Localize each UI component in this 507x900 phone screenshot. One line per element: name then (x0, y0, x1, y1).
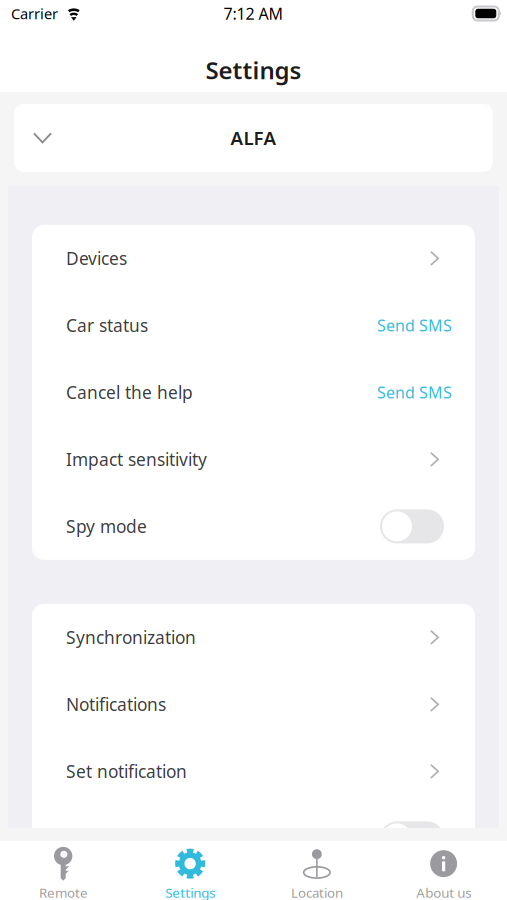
button[interactable]: Sound (32, 805, 475, 872)
staticText: Settings (165, 884, 215, 900)
staticText: Carrier (11, 4, 58, 23)
staticText: Synchronization (66, 626, 196, 649)
staticText: Car status (66, 314, 148, 337)
staticText: Impact sensitivity (66, 448, 207, 471)
staticText: Sound (66, 827, 119, 850)
staticText: Send SMS (377, 315, 452, 336)
button[interactable]: Location (253, 841, 380, 900)
staticText: Notifications (66, 693, 166, 716)
button[interactable]: Synchronization (32, 604, 475, 671)
staticText: Send SMS (377, 382, 452, 403)
button[interactable]: Cancel the help (32, 359, 475, 426)
staticText: Location (291, 884, 343, 900)
button[interactable]: Settings (127, 841, 254, 900)
staticText: Spy mode (66, 515, 147, 538)
button[interactable]: About us (380, 841, 507, 900)
staticText: Cancel the help (66, 381, 193, 404)
staticText: Set notification (66, 760, 187, 783)
button[interactable]: Devices (32, 225, 475, 292)
staticText: Remote (39, 884, 88, 900)
button[interactable]: Spy mode (32, 493, 475, 560)
button[interactable]: Impact sensitivity (32, 426, 475, 493)
button[interactable]: ALFA (14, 104, 493, 172)
button[interactable]: Notifications (32, 671, 475, 738)
staticText: 7:12 AM (223, 3, 283, 24)
button[interactable]: Set notification (32, 738, 475, 805)
button[interactable]: Car status (32, 292, 475, 359)
staticText: Settings (205, 54, 301, 86)
button[interactable]: Remote (0, 841, 127, 900)
staticText: About us (416, 884, 471, 900)
staticText: Devices (66, 247, 127, 270)
staticText: ALFA (230, 125, 276, 150)
